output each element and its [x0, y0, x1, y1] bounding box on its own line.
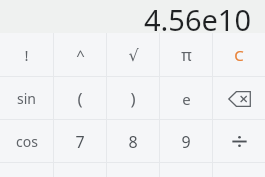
button[interactable]: π	[160, 33, 212, 77]
staticText: ^	[76, 45, 85, 65]
button[interactable]: (	[54, 77, 106, 120]
button[interactable]: )	[107, 77, 159, 120]
button[interactable]: √	[107, 33, 159, 77]
button[interactable]: 8	[107, 120, 159, 163]
staticText: C	[234, 45, 244, 65]
staticText: (	[77, 87, 83, 110]
staticText: 4.56e10	[143, 0, 251, 33]
button[interactable]: !	[0, 33, 53, 77]
staticText: 8	[128, 131, 138, 153]
staticText: √	[128, 46, 139, 65]
staticText: !	[24, 45, 29, 65]
button[interactable]: C	[213, 33, 265, 77]
staticText: sin	[17, 89, 36, 108]
button[interactable]: ^	[54, 33, 106, 77]
button[interactable]: e	[160, 77, 212, 120]
staticText: π	[181, 44, 192, 66]
staticText: e	[182, 89, 191, 109]
button[interactable]: sin	[0, 77, 53, 120]
button[interactable]: cos	[0, 120, 53, 163]
button[interactable]: 7	[54, 120, 106, 163]
staticText: )	[130, 87, 136, 110]
staticText: 7	[75, 131, 85, 153]
button[interactable]: Divide	[213, 120, 265, 163]
staticText: cos	[16, 132, 38, 151]
button[interactable]: Backspace	[213, 77, 265, 120]
staticText: 9	[181, 131, 191, 153]
button[interactable]: 9	[160, 120, 212, 163]
